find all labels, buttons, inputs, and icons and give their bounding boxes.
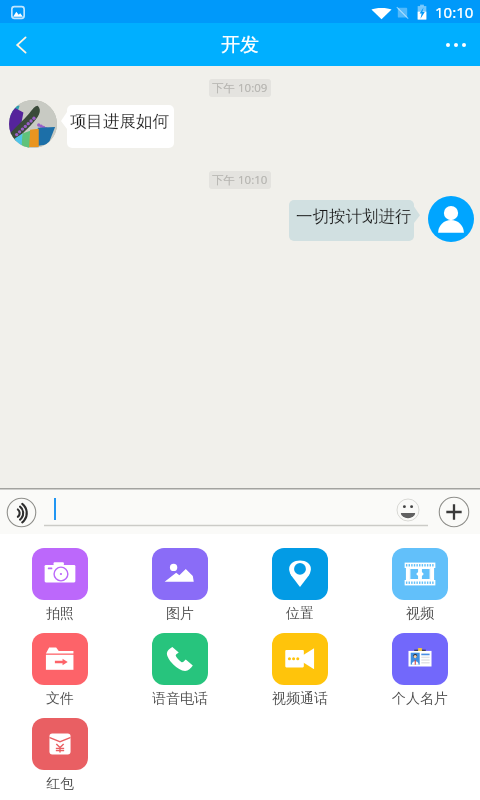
button[interactable]: Voice message	[6, 497, 37, 528]
button[interactable]: Emoji	[396, 498, 420, 522]
button[interactable]: 一切按计划进行	[289, 200, 414, 241]
button[interactable]: Back	[0, 23, 44, 66]
staticText: 10:10	[435, 2, 474, 22]
staticText: 语音电话	[152, 690, 208, 708]
staticText: 拍照	[46, 605, 74, 623]
staticText: 开发	[221, 33, 259, 57]
button[interactable]: 语音电话	[120, 633, 240, 718]
button[interactable]: 项目进展如何	[67, 105, 174, 148]
staticText: 文件	[46, 690, 74, 708]
button[interactable]: 个人名片	[360, 633, 480, 718]
staticText: 视频通话	[272, 690, 328, 708]
button[interactable]: Message input	[44, 492, 428, 526]
staticText: 一切按计划进行	[296, 206, 412, 227]
button[interactable]: 位置	[240, 548, 360, 633]
button[interactable]: Contact avatar	[9, 100, 57, 148]
staticText: 图片	[166, 605, 194, 623]
staticText: 个人名片	[392, 690, 448, 708]
button[interactable]: My avatar	[428, 196, 474, 242]
button[interactable]: 视频通话	[240, 633, 360, 718]
staticText: 视频	[406, 605, 434, 623]
button[interactable]: 文件	[0, 633, 120, 718]
button[interactable]: 红包	[0, 718, 120, 800]
button[interactable]: More functions	[438, 496, 470, 528]
staticText: 红包	[46, 775, 74, 793]
button[interactable]: 拍照	[0, 548, 120, 633]
button[interactable]: 视频	[360, 548, 480, 633]
staticText: 下午 10:09	[212, 80, 268, 96]
staticText: 下午 10:10	[212, 172, 268, 188]
button[interactable]: More options	[432, 23, 480, 66]
button[interactable]: 图片	[120, 548, 240, 633]
staticText: 项目进展如何	[70, 111, 169, 132]
staticText: 位置	[286, 605, 314, 623]
